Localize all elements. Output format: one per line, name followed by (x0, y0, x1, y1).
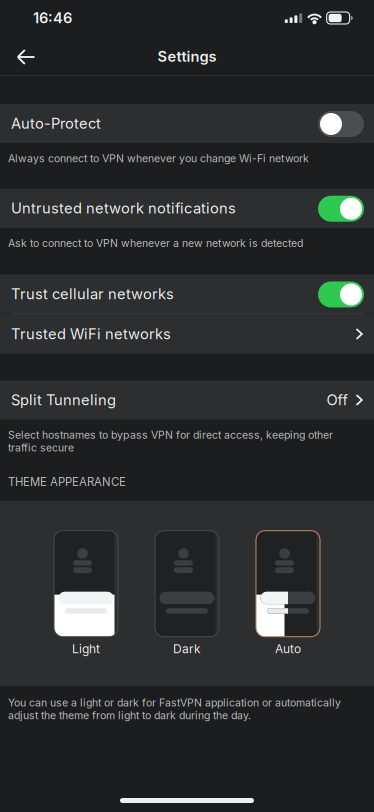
staticText: Ask to connect to VPN whenever a new net… (8, 237, 303, 249)
staticText: You can use a light or dark for FastVPN … (8, 696, 341, 722)
button[interactable]: Auto (256, 531, 320, 656)
button[interactable]: Back (0, 34, 48, 76)
staticText: Dark (173, 642, 201, 656)
staticText: Untrusted network notifications (11, 199, 236, 217)
staticText: Trusted WiFi networks (11, 325, 171, 343)
button[interactable]: Dark (155, 531, 219, 656)
staticText: Always connect to VPN whenever you chang… (8, 152, 309, 165)
button[interactable]: Trust cellular networks (0, 274, 374, 313)
staticText: Auto (275, 642, 301, 656)
staticText: Auto-Protect (11, 115, 101, 132)
button[interactable]: Untrusted network notifications (0, 189, 374, 228)
staticText: Settings (157, 48, 216, 65)
button[interactable]: Trusted WiFi networks (0, 314, 374, 353)
staticText: Trust cellular networks (11, 285, 174, 303)
button[interactable]: Split Tunneling (0, 380, 374, 419)
staticText: Select hostnames to bypass VPN for direc… (8, 428, 333, 454)
staticText: THEME APPEARANCE (8, 475, 126, 489)
button[interactable]: Light (54, 531, 118, 656)
button[interactable]: Auto-Protect (0, 104, 374, 143)
staticText: Off (326, 391, 347, 409)
staticText: Light (72, 642, 100, 656)
staticText: 16:46 (33, 9, 72, 27)
staticText: Split Tunneling (11, 391, 116, 409)
